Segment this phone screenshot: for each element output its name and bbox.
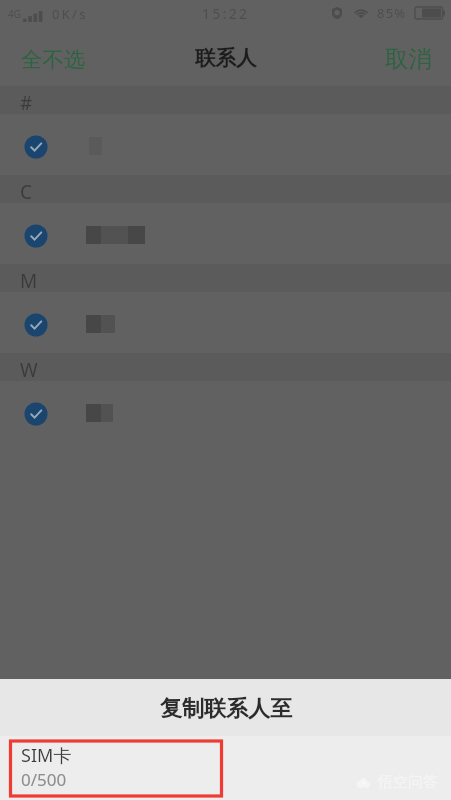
staticText: 复制联系人至 [160, 695, 292, 723]
staticText: 15:22 [202, 4, 250, 23]
button[interactable]: Selected [0, 292, 451, 353]
staticText: M [20, 268, 38, 294]
button[interactable]: SIM卡 [0, 736, 451, 791]
staticText: 取消 [385, 44, 432, 74]
button[interactable]: 全不选 [0, 29, 107, 84]
staticText: 0/500 [21, 768, 67, 791]
staticText: 全不选 [21, 46, 86, 73]
other: Selected [24, 313, 48, 337]
staticText: 4G [8, 7, 21, 21]
staticText: W [20, 357, 38, 383]
button[interactable]: Selected [0, 381, 451, 442]
button[interactable]: Selected [0, 114, 451, 175]
staticText: 0K/s [52, 5, 88, 23]
staticText: SIM卡 [21, 743, 72, 768]
staticText: C [20, 179, 33, 205]
staticText: 联系人 [195, 45, 257, 71]
other: Selected [24, 135, 48, 159]
staticText: # [20, 90, 33, 116]
button[interactable]: Selected [0, 203, 451, 264]
button[interactable]: 取消 [366, 27, 451, 85]
other: Selected [24, 402, 48, 426]
staticText: 85% [377, 4, 407, 22]
other: Selected [24, 224, 48, 248]
